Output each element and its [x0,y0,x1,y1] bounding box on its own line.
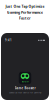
staticText: Speed up your device for gaming [9,91,41,94]
staticText: BOOST [21,80,28,83]
staticText: Faster [19,16,31,20]
staticText: Game Booster [14,86,35,90]
staticText: Gaming Performance [7,10,43,15]
staticText: Just One Tap Optimize [5,4,44,9]
staticText: 9:41 [5,38,12,42]
